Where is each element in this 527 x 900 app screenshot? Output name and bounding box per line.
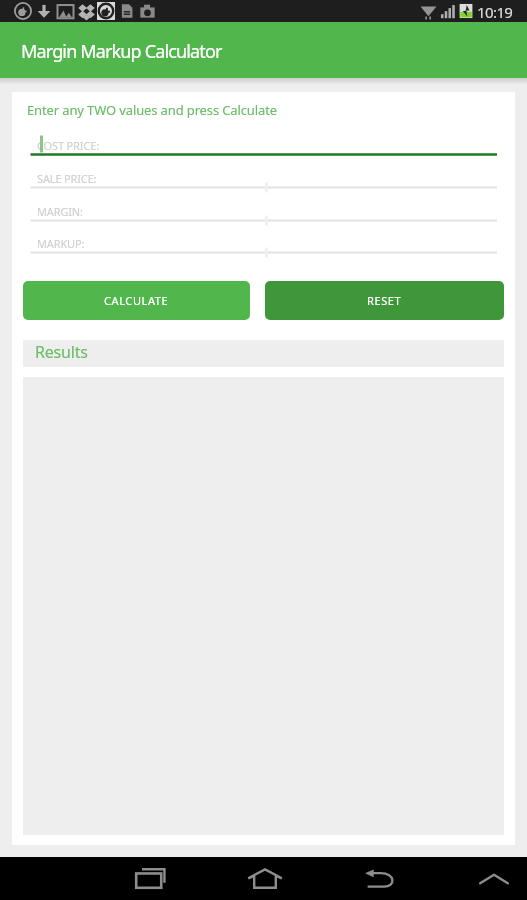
button[interactable]: Show keyboard <box>465 857 522 900</box>
staticText: COST PRICE: <box>37 138 99 153</box>
button[interactable]: Home <box>236 857 293 900</box>
button[interactable]: SALE PRICE: <box>23 171 504 188</box>
staticText: 10:19 <box>477 2 513 22</box>
button[interactable]: CALCULATE <box>23 281 250 320</box>
button[interactable]: Back <box>351 857 408 900</box>
staticText: CALCULATE <box>104 293 169 308</box>
staticText: SALE PRICE: <box>37 171 97 186</box>
staticText: RESET <box>367 293 402 308</box>
button[interactable]: Recents <box>122 857 179 900</box>
button[interactable]: Results <box>23 340 504 367</box>
button[interactable]: RESET <box>265 281 504 320</box>
staticText: Results <box>35 341 88 363</box>
staticText: Enter any TWO values and press Calculate <box>27 101 277 119</box>
staticText: MARKUP: <box>37 236 85 251</box>
staticText: Margin Markup Calculator <box>21 39 222 64</box>
button[interactable]: COST PRICE: <box>23 138 504 155</box>
staticText: MARGIN: <box>37 204 83 219</box>
button[interactable]: MARKUP: <box>23 236 504 253</box>
button[interactable]: MARGIN: <box>23 204 504 221</box>
